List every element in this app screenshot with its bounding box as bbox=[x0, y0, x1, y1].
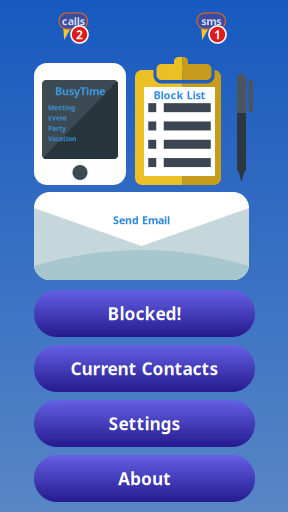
button[interactable]: Settings bbox=[34, 400, 255, 447]
staticText: calls bbox=[62, 14, 85, 28]
button[interactable]: Blocked! bbox=[34, 290, 255, 337]
staticText: Block List bbox=[153, 88, 205, 102]
staticText: Meeting bbox=[48, 103, 75, 112]
button[interactable]: Current Contacts bbox=[34, 345, 255, 392]
button[interactable]: sms bbox=[197, 12, 227, 47]
staticText: Event bbox=[48, 113, 67, 122]
staticText: Send Email bbox=[113, 213, 170, 227]
staticText: 1 bbox=[214, 26, 221, 42]
staticText: Vacation bbox=[48, 134, 76, 143]
button[interactable]: Send Email bbox=[34, 192, 249, 280]
staticText: Current Contacts bbox=[70, 357, 218, 380]
button[interactable]: calls bbox=[59, 12, 89, 47]
staticText: Settings bbox=[108, 412, 180, 435]
staticText: Party bbox=[48, 124, 66, 133]
staticText: About bbox=[118, 467, 171, 490]
button[interactable]: About bbox=[34, 455, 255, 502]
staticText: Blocked! bbox=[107, 302, 181, 325]
staticText: 2 bbox=[76, 26, 83, 42]
staticText: sms bbox=[201, 14, 221, 28]
staticText: BusyTime bbox=[55, 84, 105, 98]
